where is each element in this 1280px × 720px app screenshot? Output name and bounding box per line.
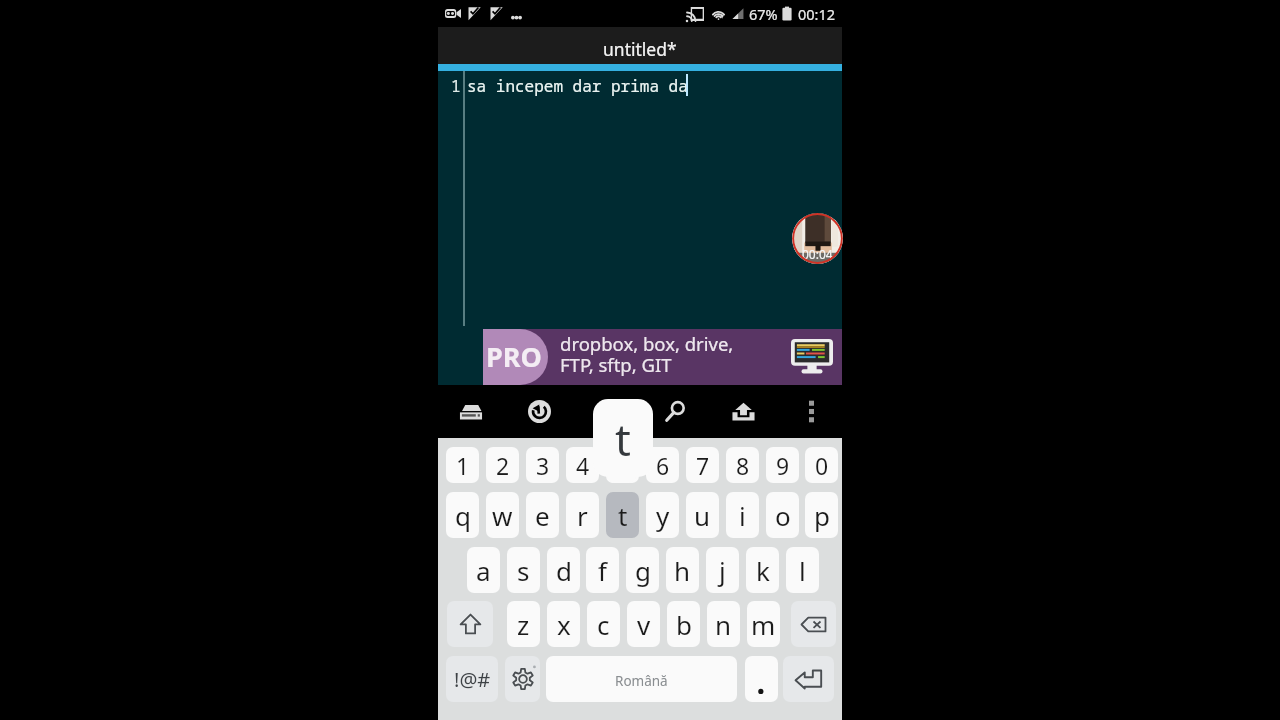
button[interactable]: Keyboard settings: [505, 656, 540, 702]
button[interactable]: s: [507, 547, 540, 593]
button[interactable]: 9: [766, 447, 799, 483]
button[interactable]: More options: [787, 387, 835, 436]
button[interactable]: Recording preview: [792, 213, 843, 264]
button[interactable]: t: [606, 492, 639, 538]
staticText: t: [615, 409, 631, 469]
staticText: 7: [696, 450, 710, 481]
staticText: i: [739, 498, 746, 533]
button[interactable]: u: [686, 492, 719, 538]
button[interactable]: h: [666, 547, 699, 593]
button[interactable]: y: [646, 492, 679, 538]
staticText: x: [557, 607, 571, 642]
button[interactable]: n: [707, 601, 740, 647]
staticText: u: [694, 498, 711, 533]
staticText: 2: [496, 450, 510, 481]
button[interactable]: PRO: [483, 329, 842, 385]
button[interactable]: 6: [646, 447, 679, 483]
button[interactable]: Undo: [515, 387, 563, 436]
button[interactable]: Share: [719, 387, 767, 436]
staticText: b: [676, 607, 692, 642]
staticText: d: [556, 553, 572, 588]
button[interactable]: a: [467, 547, 500, 593]
button[interactable]: 3: [526, 447, 559, 483]
staticText: o: [775, 498, 791, 533]
staticText: sa incepem dar prima da: [467, 75, 688, 97]
staticText: p: [814, 498, 830, 533]
staticText: g: [635, 553, 651, 588]
staticText: untitled*: [603, 37, 677, 61]
staticText: 8: [736, 450, 750, 481]
staticText: FTP, sftp, GIT: [560, 352, 672, 377]
button[interactable]: x: [547, 601, 580, 647]
button[interactable]: e: [526, 492, 559, 538]
staticText: Română: [615, 672, 668, 690]
staticText: e: [535, 498, 550, 533]
staticText: 1: [451, 75, 461, 97]
staticText: j: [719, 553, 726, 588]
staticText: dropbox, box, drive,: [560, 331, 734, 356]
button[interactable]: r: [566, 492, 599, 538]
button[interactable]: 4: [566, 447, 599, 483]
button[interactable]: Save: [447, 387, 495, 436]
button[interactable]: untitled*: [438, 27, 842, 64]
button[interactable]: l: [786, 547, 819, 593]
button[interactable]: d: [547, 547, 580, 593]
staticText: r: [577, 498, 588, 533]
staticText: z: [517, 607, 530, 642]
button[interactable]: 2: [486, 447, 519, 483]
button[interactable]: j: [706, 547, 739, 593]
button[interactable]: 0: [805, 447, 838, 483]
button[interactable]: p: [805, 492, 838, 538]
button[interactable]: Backspace: [791, 601, 836, 647]
staticText: 5: [616, 450, 630, 481]
button[interactable]: Shift: [447, 601, 493, 647]
staticText: !@#: [454, 666, 491, 693]
staticText: 3: [536, 450, 550, 481]
button[interactable]: i: [726, 492, 759, 538]
staticText: s: [517, 553, 530, 588]
staticText: n: [715, 607, 732, 642]
button[interactable]: !@#: [446, 656, 498, 702]
staticText: a: [476, 553, 491, 588]
staticText: 4: [576, 450, 590, 481]
button[interactable]: Search: [651, 387, 699, 436]
button[interactable]: Enter: [783, 656, 834, 702]
button[interactable]: w: [486, 492, 519, 538]
staticText: w: [492, 498, 513, 533]
staticText: v: [637, 607, 651, 642]
staticText: y: [656, 498, 670, 533]
staticText: f: [598, 553, 607, 588]
button[interactable]: g: [626, 547, 659, 593]
staticText: h: [674, 553, 691, 588]
button[interactable]: b: [667, 601, 700, 647]
staticText: 67%: [749, 4, 778, 24]
staticText: 9: [776, 450, 790, 481]
staticText: 0: [815, 450, 829, 481]
button[interactable]: 5: [606, 447, 639, 483]
button[interactable]: q: [446, 492, 479, 538]
button[interactable]: k: [746, 547, 779, 593]
button[interactable]: m: [747, 601, 780, 647]
staticText: 1: [456, 450, 470, 481]
staticText: 6: [656, 450, 670, 481]
button[interactable]: 1: [446, 447, 479, 483]
staticText: 00:12: [798, 4, 836, 24]
button[interactable]: 8: [726, 447, 759, 483]
button[interactable]: f: [586, 547, 619, 593]
staticText: c: [597, 607, 610, 642]
button[interactable]: o: [766, 492, 799, 538]
button[interactable]: 7: [686, 447, 719, 483]
button[interactable]: Română: [546, 656, 737, 702]
staticText: q: [455, 498, 471, 533]
staticText: t: [618, 498, 628, 533]
button[interactable]: c: [587, 601, 620, 647]
button[interactable]: v: [627, 601, 660, 647]
button[interactable]: z: [507, 601, 540, 647]
staticText: PRO: [486, 338, 542, 375]
button[interactable]: Period: [745, 656, 778, 702]
staticText: m: [751, 607, 776, 642]
staticText: l: [799, 553, 806, 588]
staticText: k: [756, 553, 770, 588]
staticText: 00:04: [802, 246, 833, 262]
